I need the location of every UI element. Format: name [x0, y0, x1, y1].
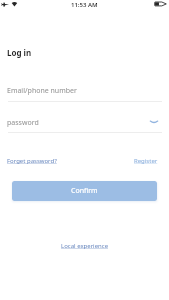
staticText: 11:53 AM: [71, 1, 98, 9]
button[interactable]: Confirm: [12, 181, 157, 201]
button[interactable]: Local experience: [61, 242, 109, 250]
button[interactable]: Register: [134, 157, 158, 165]
staticText: password: [7, 118, 39, 128]
staticText: Email/phone number: [7, 86, 77, 96]
staticText: Confirm: [71, 186, 98, 196]
button[interactable]: Forget password?: [7, 157, 57, 165]
button[interactable]: Show password: [145, 112, 162, 129]
staticText: Log in: [7, 47, 32, 58]
